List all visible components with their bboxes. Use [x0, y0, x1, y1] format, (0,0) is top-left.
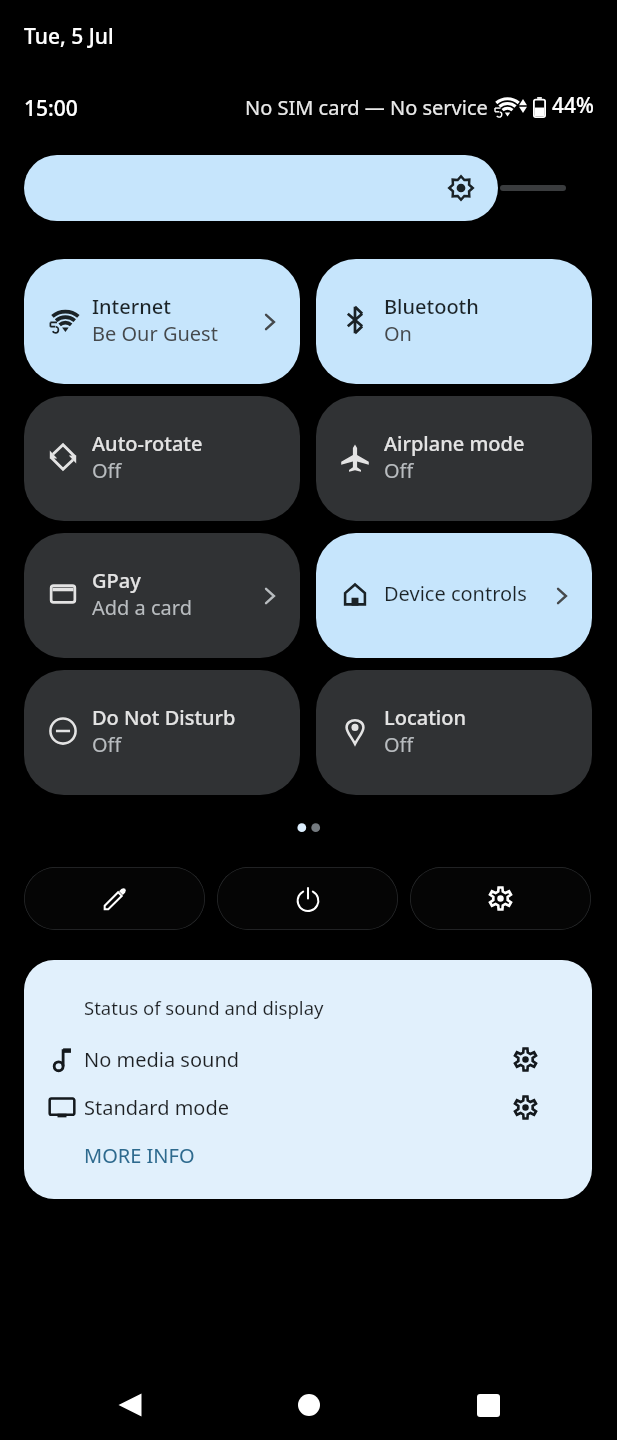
button[interactable]: Edit	[24, 867, 205, 930]
button[interactable]: GPay	[24, 533, 300, 658]
button[interactable]: Airplane mode	[316, 396, 592, 521]
button[interactable]: Settings	[505, 1039, 545, 1079]
staticText: GPay	[92, 567, 141, 594]
button[interactable]: Internet	[24, 259, 300, 384]
staticText: Standard mode	[84, 1094, 230, 1121]
button[interactable]: Power	[217, 867, 398, 930]
button[interactable]: Home	[285, 1381, 333, 1429]
button[interactable]: Back	[106, 1381, 154, 1429]
staticText: Off	[384, 457, 414, 484]
button[interactable]: Recents	[464, 1381, 512, 1429]
staticText: 15:00	[24, 94, 78, 123]
staticText: Location	[384, 704, 466, 731]
staticText: Auto-rotate	[92, 430, 203, 457]
button[interactable]: Device controls	[316, 533, 592, 658]
staticText: Tue, 5 Jul	[24, 22, 114, 51]
staticText: No SIM card — No service	[245, 94, 488, 121]
button[interactable]: Brightness	[24, 155, 498, 221]
staticText: Internet	[92, 293, 171, 320]
button[interactable]: Do Not Disturb	[24, 670, 300, 795]
staticText: Status of sound and display	[84, 995, 324, 1020]
staticText: On	[384, 320, 412, 347]
staticText: Device controls	[384, 580, 527, 607]
button[interactable]: Location	[316, 670, 592, 795]
button[interactable]: Auto-rotate	[24, 396, 300, 521]
staticText: Be Our Guest	[92, 320, 218, 347]
staticText: Airplane mode	[384, 430, 525, 457]
staticText: No media sound	[84, 1046, 240, 1073]
staticText: Off	[92, 731, 122, 758]
staticText: Bluetooth	[384, 293, 479, 320]
button[interactable]: Settings	[410, 867, 591, 930]
button[interactable]: Bluetooth	[316, 259, 592, 384]
staticText: Do Not Disturb	[92, 704, 236, 731]
staticText: Add a card	[92, 594, 192, 621]
staticText: Off	[384, 731, 414, 758]
staticText: Off	[92, 457, 122, 484]
button[interactable]: MORE INFO	[84, 1142, 195, 1169]
button[interactable]: Standard mode	[48, 1087, 545, 1127]
button[interactable]: Settings	[505, 1087, 545, 1127]
staticText: 44%	[552, 91, 594, 120]
button[interactable]: No media sound	[48, 1039, 545, 1079]
